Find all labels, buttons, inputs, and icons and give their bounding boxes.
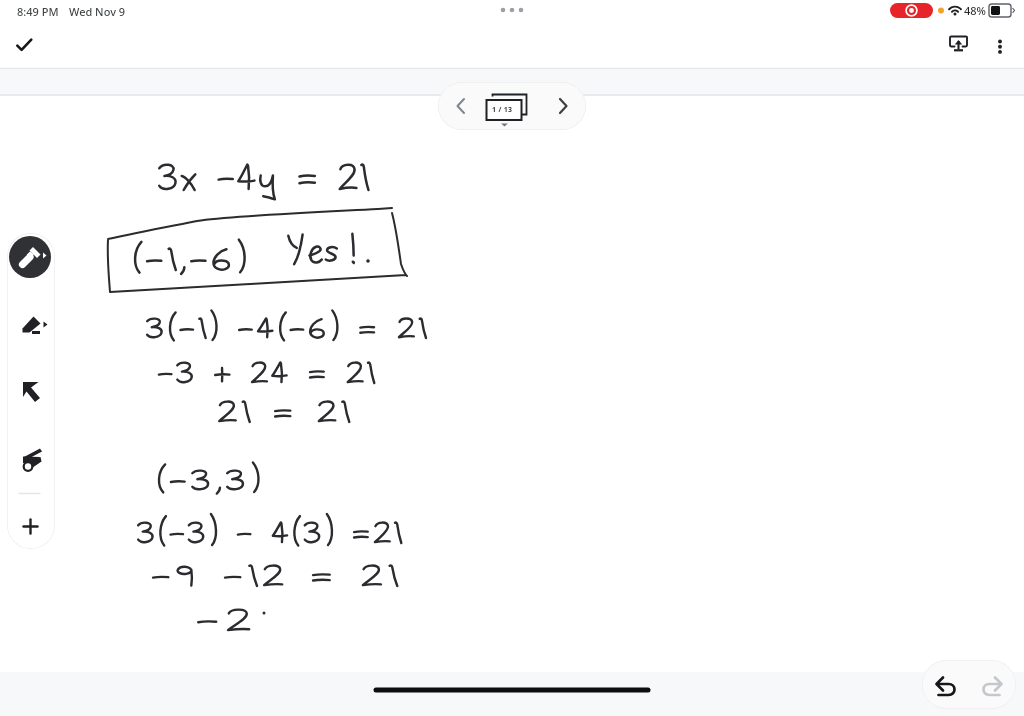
button[interactable]: Select	[7, 360, 55, 422]
staticText: Wed Nov 9	[69, 4, 126, 19]
button[interactable]: Page 1 of 13	[481, 82, 541, 130]
button[interactable]: Done	[7, 28, 43, 64]
staticText: 48%	[964, 3, 986, 18]
button[interactable]: Previous page	[438, 82, 482, 130]
staticText: 1 / 13	[492, 105, 513, 115]
button[interactable]: More options	[988, 28, 1013, 53]
button[interactable]: Add tool	[7, 485, 55, 549]
button[interactable]: Laser pointer	[7, 431, 55, 493]
button[interactable]: Pen	[9, 236, 51, 278]
staticText: 8:49 PM	[17, 4, 59, 19]
button[interactable]: Redo	[970, 663, 1014, 707]
button[interactable]: Eraser	[7, 292, 55, 356]
button[interactable]: Present to screen	[941, 25, 975, 59]
button[interactable]: Undo	[924, 663, 968, 707]
button[interactable]: Next page	[542, 82, 586, 130]
